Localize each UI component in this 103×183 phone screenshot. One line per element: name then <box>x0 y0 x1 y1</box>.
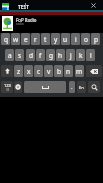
button[interactable]: n <box>64 65 73 77</box>
staticText: FoP Radio <box>16 17 37 23</box>
button[interactable]: k <box>76 49 85 61</box>
button[interactable]: 123 <box>1 81 13 93</box>
staticText: u <box>63 35 68 44</box>
button[interactable]: q <box>1 33 10 45</box>
staticText: c <box>37 67 41 76</box>
staticText: l <box>90 51 92 60</box>
staticText: i <box>75 35 77 44</box>
button[interactable]: Shift <box>1 65 13 77</box>
button[interactable]: Search <box>88 81 100 93</box>
staticText: o <box>84 35 88 44</box>
button[interactable]: u <box>61 33 70 45</box>
button[interactable]: FoP Radio <box>0 15 103 32</box>
button[interactable]: y <box>51 33 60 45</box>
staticText: e <box>24 35 28 44</box>
button[interactable]: r <box>31 33 40 45</box>
staticText: t <box>44 35 47 44</box>
button[interactable]: e <box>21 33 30 45</box>
button[interactable]: En <box>77 81 86 93</box>
staticText: s <box>18 51 22 60</box>
staticText: n <box>66 67 71 76</box>
staticText: k <box>79 51 83 60</box>
staticText: m <box>76 67 83 76</box>
button[interactable]: s <box>15 49 24 61</box>
button[interactable]: Space <box>24 81 66 93</box>
button[interactable]: v <box>44 65 53 77</box>
staticText: TEST <box>18 4 30 10</box>
button[interactable]: h <box>56 49 65 61</box>
button[interactable]: Clear search <box>88 1 99 9</box>
button[interactable]: x <box>24 65 33 77</box>
staticText: z <box>17 67 21 76</box>
button[interactable]: f <box>36 49 45 61</box>
button[interactable]: m <box>75 65 84 77</box>
staticText: En <box>79 85 84 90</box>
staticText: 123 <box>4 83 11 88</box>
staticText: p <box>94 35 98 44</box>
staticText: q <box>4 35 8 44</box>
button[interactable]: . <box>69 81 75 93</box>
staticText: . <box>71 83 73 91</box>
staticText: y <box>54 35 58 44</box>
staticText: h <box>58 51 63 60</box>
staticText: g <box>49 51 53 60</box>
button[interactable]: a <box>5 49 14 61</box>
staticText: w <box>13 35 19 44</box>
button[interactable]: i <box>71 33 80 45</box>
button[interactable]: Settings <box>14 81 22 93</box>
staticText: v <box>47 67 51 76</box>
button[interactable]: App icon <box>2 3 9 10</box>
staticText: radio <box>16 22 24 26</box>
staticText: j <box>70 51 72 60</box>
staticText: r <box>34 35 37 44</box>
button[interactable]: d <box>26 49 35 61</box>
button[interactable]: t <box>41 33 50 45</box>
button[interactable]: z <box>14 65 23 77</box>
staticText: x <box>27 67 31 76</box>
staticText: d <box>29 51 33 60</box>
button[interactable]: g <box>46 49 55 61</box>
staticText: ?# <box>6 88 10 92</box>
staticText: a <box>8 51 12 60</box>
button[interactable]: Backspace <box>86 65 102 77</box>
button[interactable]: p <box>91 33 100 45</box>
button[interactable]: w <box>11 33 20 45</box>
staticText: f <box>39 51 42 60</box>
button[interactable]: b <box>54 65 63 77</box>
button[interactable]: l <box>86 49 95 61</box>
button[interactable]: j <box>66 49 75 61</box>
button[interactable]: o <box>81 33 90 45</box>
staticText: b <box>57 67 61 76</box>
button[interactable]: c <box>34 65 43 77</box>
